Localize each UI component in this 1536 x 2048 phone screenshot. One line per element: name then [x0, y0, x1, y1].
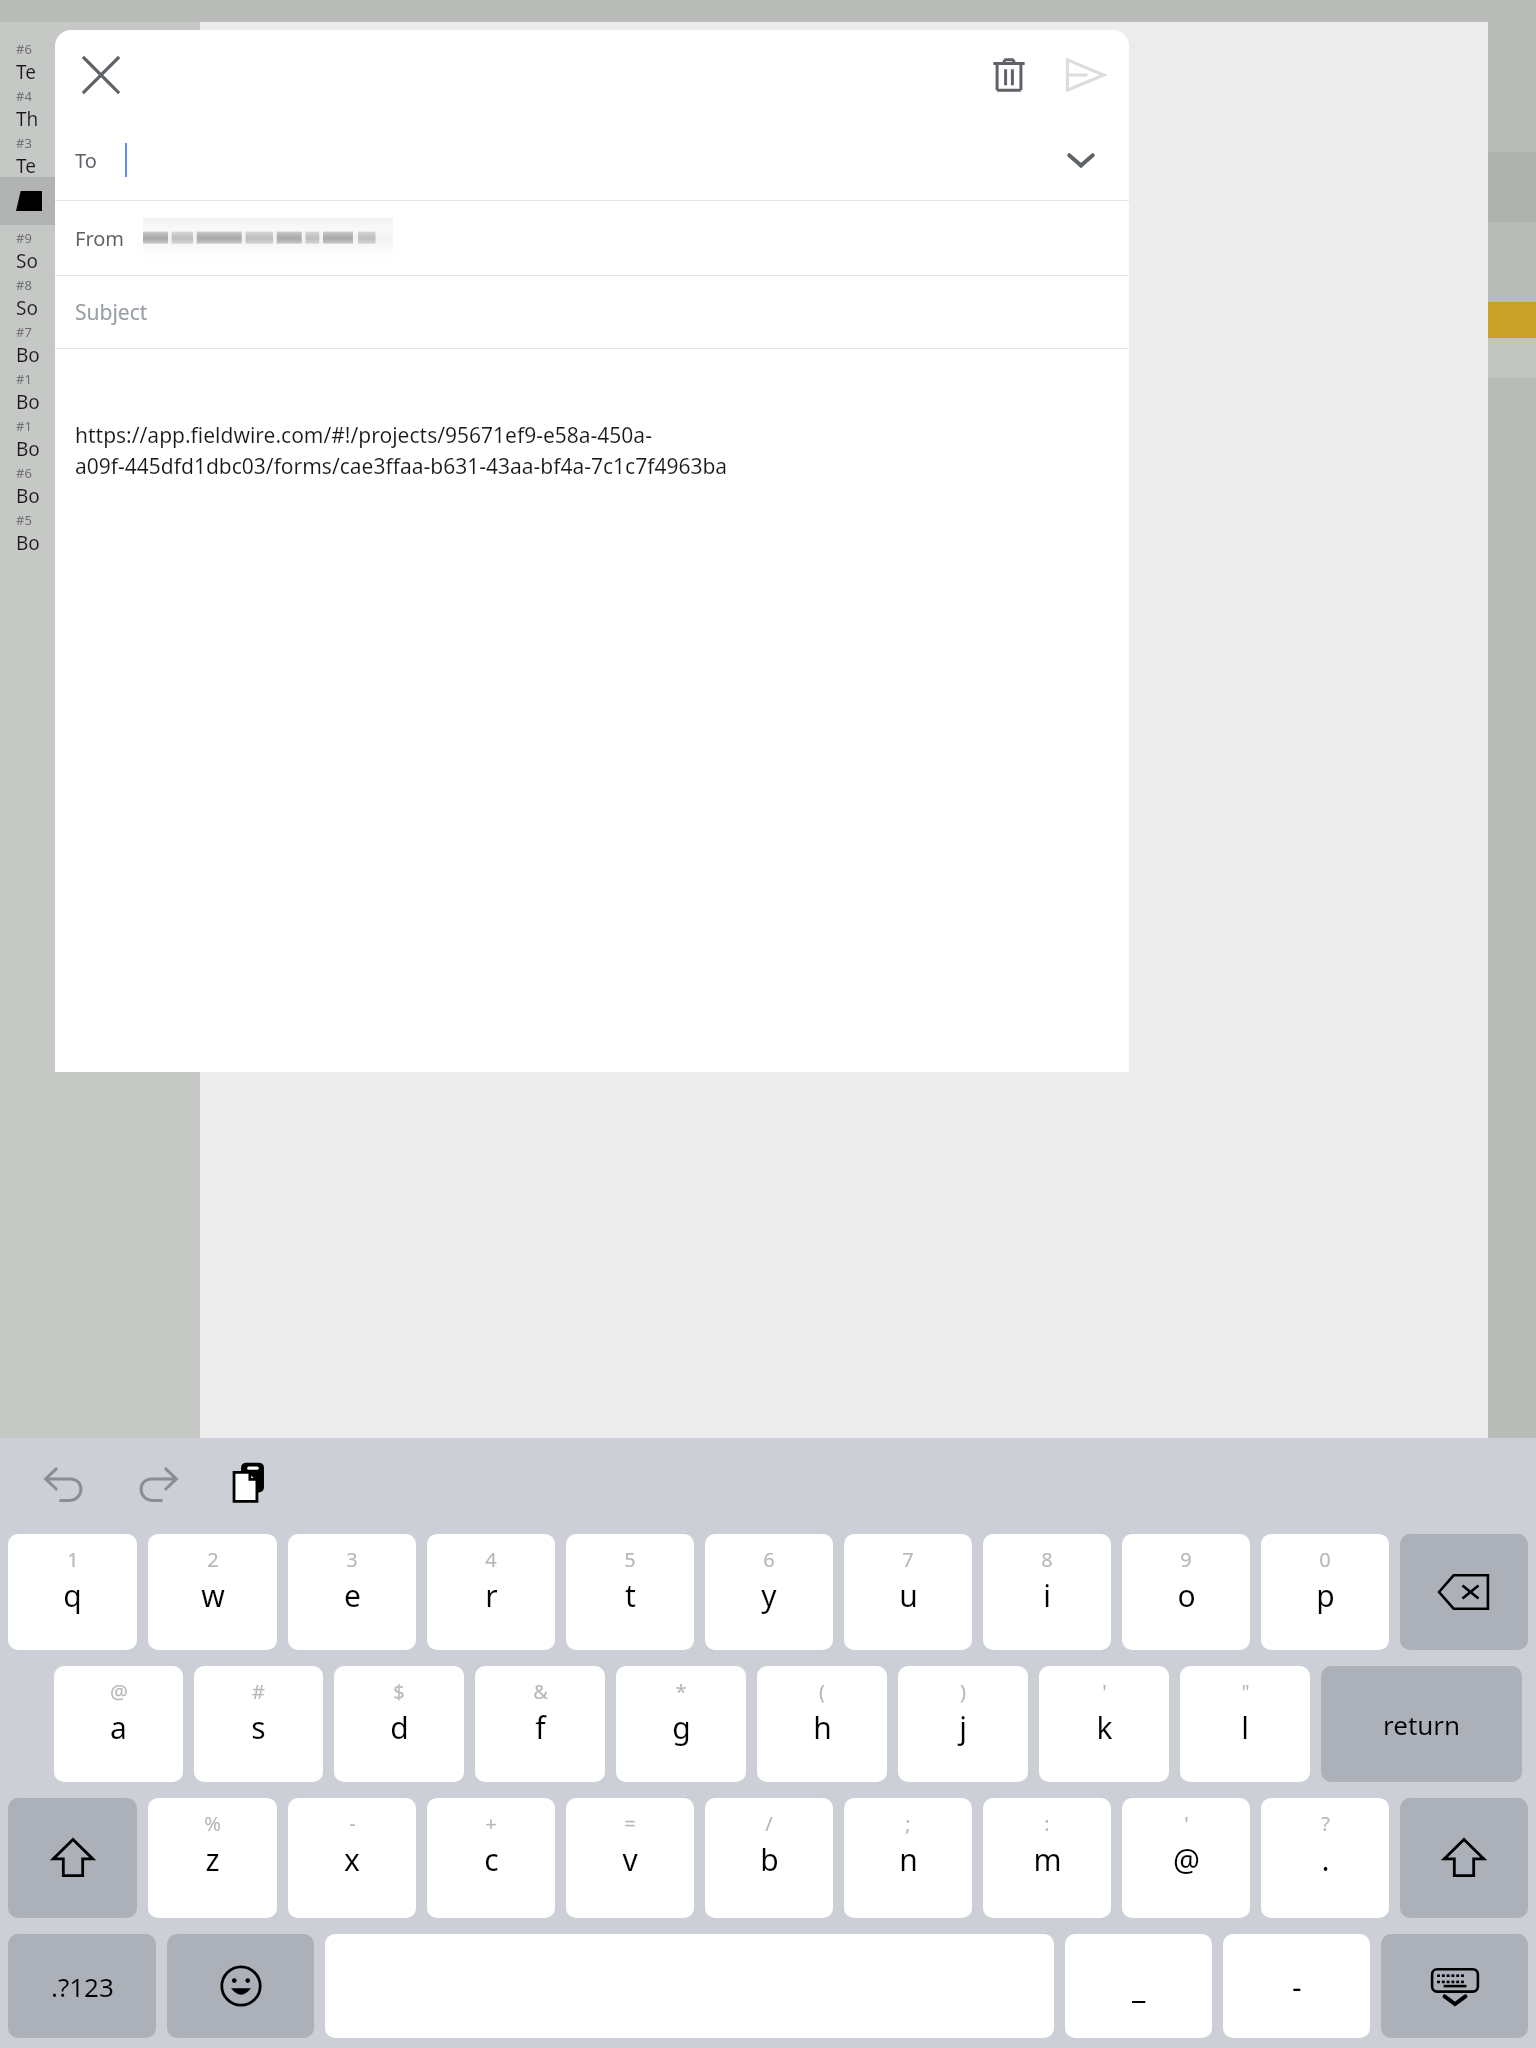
staticText: *: [675, 1678, 687, 1705]
staticText: #9: [16, 229, 32, 247]
button[interactable]: Expand recipients: [1053, 132, 1109, 188]
button[interactable]: .?123: [8, 1934, 156, 2038]
staticText: &: [533, 1678, 548, 1705]
staticText: p: [1316, 1575, 1335, 1616]
staticText: w: [201, 1575, 225, 1616]
button[interactable]: https://app.fieldwire.com/#!/projects/95…: [55, 349, 1129, 1072]
staticText: t: [625, 1575, 636, 1616]
button[interactable]: $: [334, 1666, 464, 1782]
button[interactable]: &: [475, 1666, 605, 1782]
staticText: 4: [485, 1546, 497, 1573]
button[interactable]: #: [194, 1666, 323, 1782]
staticText: -: [349, 1810, 356, 1837]
staticText: m: [1033, 1839, 1062, 1880]
button[interactable]: 1: [8, 1534, 137, 1650]
staticText: 1: [67, 1546, 79, 1573]
staticText: i: [1043, 1575, 1051, 1616]
button[interactable]: return: [1321, 1666, 1522, 1782]
staticText: d: [390, 1707, 409, 1748]
staticText: b: [760, 1839, 779, 1880]
button[interactable]: 4: [427, 1534, 555, 1650]
staticText: #1: [16, 370, 32, 388]
button[interactable]: Backspace: [1400, 1534, 1528, 1650]
button[interactable]: ?: [1261, 1798, 1389, 1918]
button[interactable]: (: [757, 1666, 887, 1782]
button[interactable]: Send: [1053, 43, 1117, 107]
button[interactable]: 9: [1122, 1534, 1250, 1650]
button[interactable]: 5: [566, 1534, 694, 1650]
button[interactable]: 2: [148, 1534, 277, 1650]
button[interactable]: @: [54, 1666, 183, 1782]
staticText: 7: [902, 1546, 914, 1573]
button[interactable]: Emoji: [167, 1934, 314, 2038]
button[interactable]: Subject: [55, 276, 1129, 348]
staticText: #7: [16, 323, 32, 341]
staticText: g: [672, 1707, 691, 1748]
staticText: So: [16, 295, 38, 319]
staticText: +: [485, 1810, 497, 1837]
staticText: k: [1096, 1707, 1113, 1748]
button[interactable]: Redo: [122, 1447, 192, 1517]
staticText: 3: [346, 1546, 358, 1573]
staticText: ': [1184, 1810, 1189, 1837]
staticText: 5: [624, 1546, 636, 1573]
staticText: /: [765, 1810, 773, 1837]
button[interactable]: 6: [705, 1534, 833, 1650]
staticText: Subject: [75, 298, 148, 327]
staticText: Bo: [16, 436, 40, 460]
staticText: $: [393, 1678, 405, 1705]
staticText: Bo: [16, 483, 40, 507]
button[interactable]: 7: [844, 1534, 972, 1650]
button[interactable]: _: [1065, 1934, 1212, 2038]
button[interactable]: Undo: [30, 1447, 100, 1517]
staticText: So: [16, 248, 38, 272]
staticText: y: [761, 1575, 777, 1616]
button[interactable]: ': [1122, 1798, 1250, 1918]
button[interactable]: ): [898, 1666, 1028, 1782]
staticText: Bo: [16, 530, 40, 554]
button[interactable]: -: [1223, 1934, 1370, 2038]
button[interactable]: -: [288, 1798, 416, 1918]
staticText: 9: [1180, 1546, 1192, 1573]
button[interactable]: 3: [288, 1534, 416, 1650]
button[interactable]: *: [616, 1666, 746, 1782]
button[interactable]: To: [55, 120, 1129, 200]
staticText: f: [535, 1707, 546, 1748]
button[interactable]: =: [566, 1798, 694, 1918]
staticText: #3: [16, 134, 32, 152]
button[interactable]: :: [983, 1798, 1111, 1918]
staticText: s: [251, 1707, 266, 1748]
staticText: @: [1173, 1839, 1200, 1880]
staticText: =: [624, 1810, 636, 1837]
staticText: From: [75, 225, 125, 252]
button[interactable]: Shift: [1400, 1798, 1528, 1918]
staticText: x: [344, 1839, 360, 1880]
staticText: ;: [905, 1810, 911, 1837]
button[interactable]: Delete draft: [977, 43, 1041, 107]
button[interactable]: ;: [844, 1798, 972, 1918]
button[interactable]: ': [1039, 1666, 1169, 1782]
staticText: #4: [16, 87, 32, 105]
button[interactable]: /: [705, 1798, 833, 1918]
button[interactable]: Close: [69, 43, 133, 107]
staticText: 6: [763, 1546, 775, 1573]
staticText: ': [1102, 1678, 1107, 1705]
button[interactable]: Shift: [8, 1798, 137, 1918]
button[interactable]: Paste: [214, 1447, 284, 1517]
button[interactable]: %: [148, 1798, 277, 1918]
button[interactable]: +: [427, 1798, 555, 1918]
staticText: 0: [1319, 1546, 1331, 1573]
staticText: c: [484, 1839, 499, 1880]
staticText: n: [899, 1839, 918, 1880]
staticText: #6: [16, 464, 32, 482]
staticText: z: [205, 1839, 220, 1880]
button[interactable]: 0: [1261, 1534, 1389, 1650]
button[interactable]: ": [1180, 1666, 1310, 1782]
staticText: u: [899, 1575, 918, 1616]
button[interactable]: Hide keyboard: [1381, 1934, 1528, 2038]
staticText: a: [110, 1707, 127, 1748]
staticText: .?123: [51, 1969, 114, 2004]
button[interactable]: 8: [983, 1534, 1111, 1650]
button[interactable]: From: [55, 201, 1129, 275]
